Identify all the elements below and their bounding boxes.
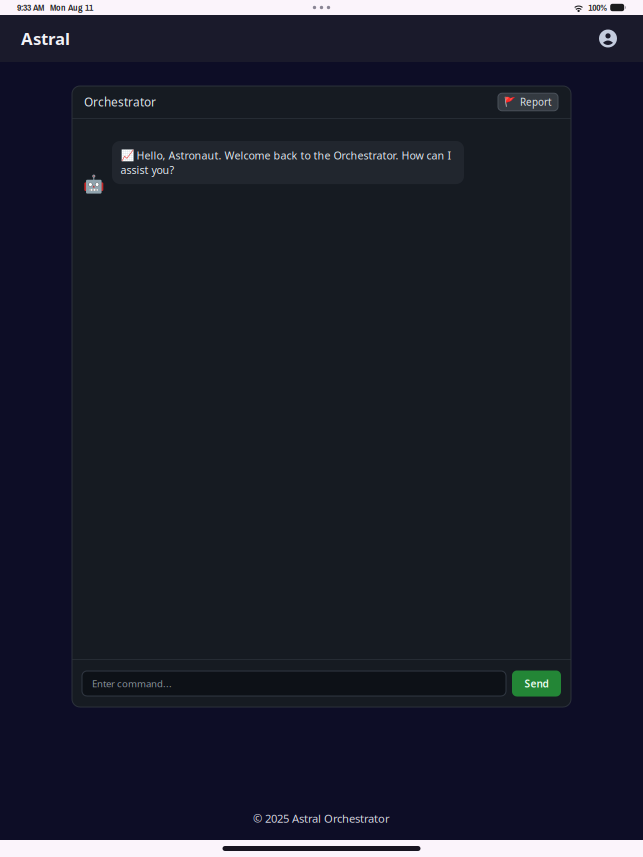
button[interactable]: Account [599, 29, 617, 47]
staticText: 🚩 [504, 97, 516, 107]
button[interactable]: Send [512, 670, 561, 696]
staticText: Report [520, 95, 552, 109]
staticText: © 2025 Astral Orchestrator [253, 811, 390, 826]
staticText: Orchestrator [84, 94, 156, 110]
staticText: Enter command... [92, 677, 172, 690]
staticText: Astral [21, 27, 70, 50]
staticText: Send [524, 677, 548, 690]
button[interactable]: 🚩 [498, 93, 558, 111]
staticText: 📈 Hello, Astronaut. Welcome back to the … [120, 148, 451, 177]
staticText: 🤖 [83, 174, 105, 194]
staticText: 100% [588, 1, 607, 14]
staticText: 9:33 AM Mon Aug 11 [17, 1, 93, 14]
